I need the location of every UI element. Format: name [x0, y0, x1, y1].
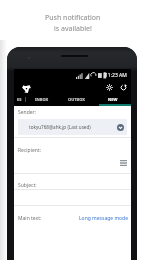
staticText: ES: [17, 97, 22, 102]
button[interactable]: Settings: [104, 82, 114, 92]
button[interactable]: INBOX: [25, 95, 58, 106]
staticText: 11:23 AM: [105, 72, 127, 79]
staticText: OUTBOX: [68, 97, 85, 102]
staticText: Sender:: [18, 109, 36, 116]
button[interactable]: Refresh: [118, 82, 128, 92]
staticText: tokyu768@ahk.jp (Last used): [29, 124, 91, 130]
button[interactable]: Choose recipient: [14, 158, 131, 168]
staticText: INBOX: [35, 97, 49, 102]
button[interactable]: ES: [14, 95, 25, 106]
staticText: is available!: [54, 24, 92, 34]
staticText: Long message mode: [79, 215, 128, 222]
staticText: Main text:: [18, 215, 42, 222]
button[interactable]: NEW: [95, 95, 131, 106]
button[interactable]: tokyu768@ahk.jp (Last used): [18, 119, 127, 135]
staticText: Push notification: [45, 13, 101, 23]
button[interactable]: Long message mode: [79, 215, 128, 222]
button[interactable]: App logo: [20, 82, 32, 94]
staticText: Recipient:: [18, 147, 42, 154]
button[interactable]: OUTBOX: [58, 95, 95, 106]
staticText: Subject:: [18, 182, 37, 189]
staticText: NEW: [108, 97, 118, 102]
button[interactable]: [14, 189, 131, 205]
